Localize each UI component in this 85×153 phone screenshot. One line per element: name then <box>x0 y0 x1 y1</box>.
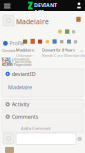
button[interactable]: Comments <box>5 114 39 119</box>
staticText: Deviant for 8 Years <box>42 47 75 52</box>
button[interactable]: Add a Comment <box>21 126 50 131</box>
staticText: Madelaire <box>16 47 34 52</box>
staticText: Comments <box>12 59 32 64</box>
staticText: 8,281 <box>1 56 10 62</box>
staticText: deviantID <box>12 70 36 77</box>
staticText: ART <box>34 8 44 15</box>
staticText: 43,895 <box>1 62 12 67</box>
staticText: Pageviews <box>14 62 32 67</box>
staticText: Madelaire <box>8 84 32 91</box>
staticText: Profile <box>9 40 24 47</box>
staticText: 1,674 <box>1 59 10 64</box>
button[interactable]: Activity <box>5 102 30 107</box>
button[interactable]: DeviantArt <box>28 2 57 10</box>
button[interactable]: Llama badge <box>76 16 81 22</box>
staticText: DEVIANT <box>34 2 57 9</box>
staticText: Comments <box>12 113 39 120</box>
button[interactable]: Account <box>76 2 82 8</box>
staticText: Activity <box>12 101 30 108</box>
staticText: Unknown <box>16 53 32 58</box>
button[interactable]: Comment field <box>16 133 76 144</box>
button[interactable]: More <box>79 50 83 53</box>
staticText: Deviations <box>12 56 30 62</box>
button[interactable]: Profile <box>3 41 24 46</box>
staticText: Add a Comment <box>21 126 50 131</box>
staticText: Deviant <box>2 48 15 53</box>
button[interactable]: deviantID <box>5 71 36 76</box>
button[interactable]: Menu <box>4 3 12 9</box>
staticText: Madelaire <box>16 17 49 26</box>
button[interactable]: Clear <box>77 137 82 141</box>
button[interactable]: Madelaire <box>8 84 32 91</box>
staticText: Needs Core Membership <box>42 53 85 58</box>
